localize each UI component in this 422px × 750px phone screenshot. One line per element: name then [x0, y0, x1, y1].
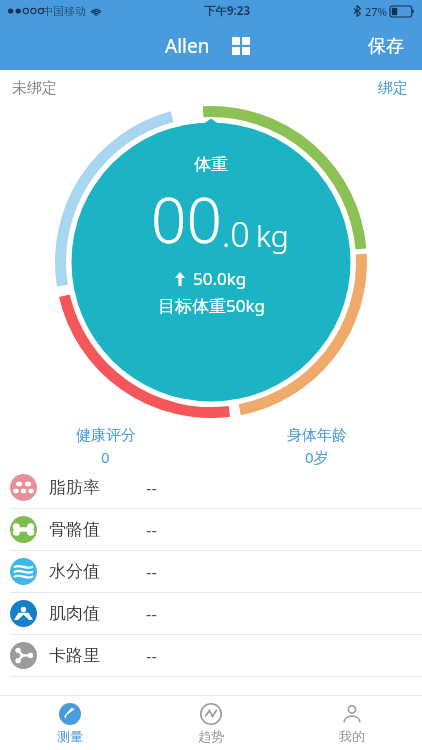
- staticText: 保存: [368, 35, 404, 58]
- staticText: 下午9:23: [204, 3, 250, 19]
- button[interactable]: 保存: [350, 22, 422, 70]
- button[interactable]: 体重: [55, 106, 367, 418]
- staticText: 卡路里: [49, 645, 100, 666]
- staticText: 00: [151, 177, 222, 261]
- staticText: 身体年龄: [287, 426, 347, 445]
- button[interactable]: 脂肪率: [0, 467, 422, 508]
- staticText: 0: [101, 447, 110, 467]
- staticText: --: [146, 644, 157, 667]
- button[interactable]: 绑定: [364, 70, 422, 106]
- staticText: 肌肉值: [49, 603, 100, 624]
- staticText: 健康评分: [76, 426, 136, 445]
- staticText: 骨骼值: [49, 519, 100, 540]
- staticText: 水分值: [49, 561, 100, 582]
- button[interactable]: 健康评分: [0, 426, 211, 467]
- button[interactable]: 测量: [0, 696, 140, 750]
- staticText: .0: [222, 211, 250, 257]
- staticText: --: [146, 602, 157, 625]
- staticText: 50.0kg: [193, 267, 247, 290]
- staticText: 目标体重50kg: [158, 294, 265, 317]
- staticText: 脂肪率: [49, 477, 100, 498]
- staticText: 测量: [57, 728, 83, 744]
- button[interactable]: Switch user: [224, 29, 258, 63]
- staticText: Allen: [165, 33, 210, 59]
- staticText: --: [146, 476, 157, 499]
- staticText: 未绑定: [12, 79, 57, 98]
- button[interactable]: 卡路里: [0, 635, 422, 676]
- staticText: 27%: [365, 4, 387, 19]
- button[interactable]: 肌肉值: [0, 593, 422, 634]
- staticText: kg: [256, 215, 289, 256]
- button[interactable]: 我的: [281, 696, 422, 750]
- staticText: 绑定: [378, 79, 408, 98]
- staticText: 趋势: [198, 728, 224, 744]
- staticText: --: [146, 518, 157, 541]
- button[interactable]: 水分值: [0, 551, 422, 592]
- button[interactable]: 骨骼值: [0, 509, 422, 550]
- staticText: 体重: [194, 154, 228, 175]
- staticText: 中国移动: [42, 4, 86, 18]
- staticText: --: [146, 560, 157, 583]
- staticText: 我的: [339, 728, 365, 744]
- button[interactable]: 身体年龄: [211, 426, 422, 467]
- button[interactable]: 趋势: [140, 696, 281, 750]
- staticText: 0岁: [305, 447, 329, 467]
